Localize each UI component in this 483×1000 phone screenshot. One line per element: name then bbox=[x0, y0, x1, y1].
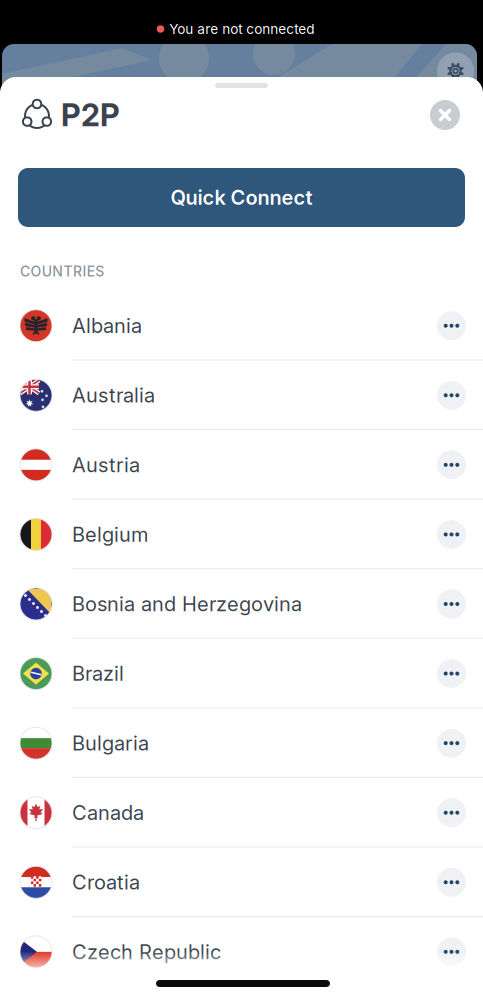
button[interactable]: Quick Connect bbox=[18, 168, 465, 227]
button[interactable]: Close bbox=[430, 100, 460, 130]
staticText: Brazil bbox=[72, 661, 124, 686]
staticText: Quick Connect bbox=[170, 185, 312, 210]
staticText: Australia bbox=[72, 383, 155, 407]
button[interactable]: More options for Croatia bbox=[437, 868, 466, 897]
button[interactable]: More options for Belgium bbox=[437, 520, 466, 549]
button[interactable]: More options for Austria bbox=[437, 450, 466, 479]
button[interactable]: Albania bbox=[0, 291, 483, 360]
button[interactable]: Czech Republic bbox=[0, 917, 483, 987]
button[interactable]: More options for Australia bbox=[437, 381, 466, 410]
staticText: COUNTRIES bbox=[20, 263, 104, 280]
button[interactable]: Bosnia and Herzegovina bbox=[0, 569, 483, 639]
button[interactable]: More options for Czech Republic bbox=[437, 937, 466, 966]
button[interactable]: Croatia bbox=[0, 847, 483, 917]
button[interactable]: More options for Albania bbox=[437, 311, 466, 340]
staticText: Canada bbox=[72, 801, 144, 825]
button[interactable]: More options for Bosnia and Herzegovina bbox=[437, 589, 466, 618]
button[interactable]: More options for Canada bbox=[437, 798, 466, 827]
button[interactable]: More options for Bulgaria bbox=[437, 729, 466, 758]
button[interactable]: More options for Brazil bbox=[437, 659, 466, 688]
staticText: Austria bbox=[72, 453, 140, 477]
staticText: Bosnia and Herzegovina bbox=[72, 592, 302, 616]
button[interactable]: Bulgaria bbox=[0, 708, 483, 778]
button[interactable]: Settings bbox=[437, 52, 474, 89]
staticText: P2P bbox=[61, 96, 120, 133]
button[interactable]: Australia bbox=[0, 360, 483, 430]
button[interactable]: Austria bbox=[0, 430, 483, 500]
button[interactable]: Brazil bbox=[0, 639, 483, 708]
button[interactable]: Canada bbox=[0, 778, 483, 847]
staticText: Czech Republic bbox=[72, 940, 221, 964]
staticText: Bulgaria bbox=[72, 731, 149, 755]
staticText: Albania bbox=[72, 314, 142, 338]
staticText: Belgium bbox=[72, 522, 148, 546]
staticText: Croatia bbox=[72, 870, 140, 894]
button[interactable]: Belgium bbox=[0, 500, 483, 569]
staticText: You are not connected bbox=[169, 21, 314, 37]
